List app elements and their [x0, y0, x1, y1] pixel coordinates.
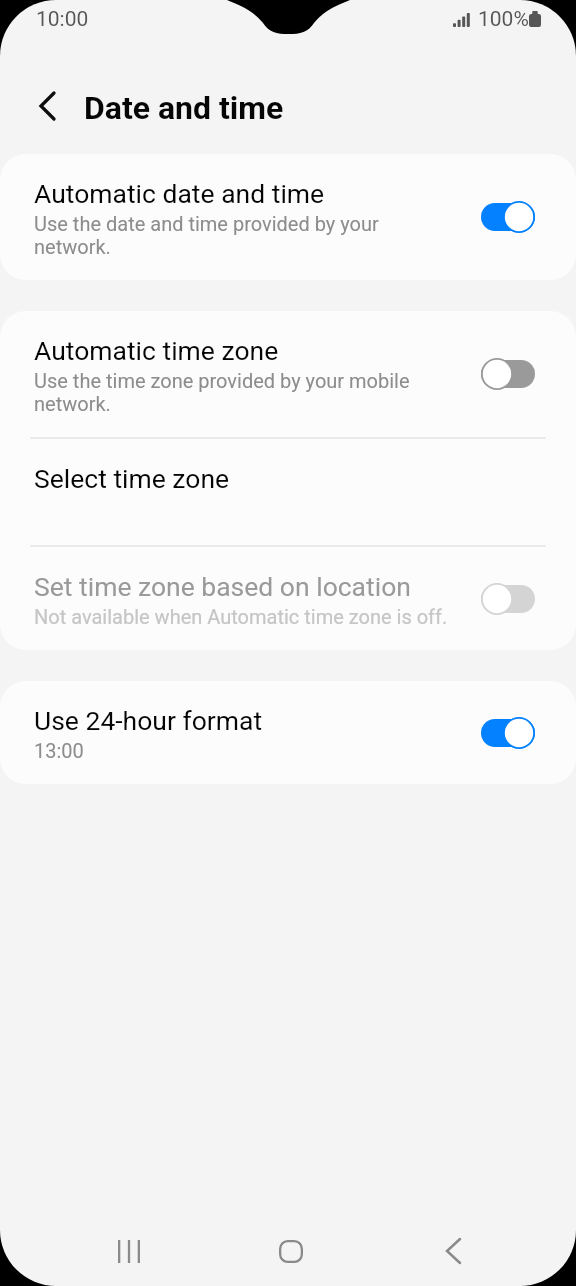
staticText: Select time zone	[34, 463, 230, 494]
staticText: 13:00	[34, 739, 84, 762]
staticText: Set time zone based on location	[34, 571, 411, 602]
button[interactable]: Back	[417, 1216, 489, 1286]
button[interactable]: Switch on	[481, 717, 535, 749]
staticText: Automatic date and time	[34, 178, 325, 209]
button[interactable]: Use 24-hour format	[0, 681, 576, 784]
staticText: Use the time zone provided by your mobil…	[34, 369, 454, 415]
staticText: 100%	[478, 7, 529, 32]
button[interactable]: Set time zone based on location	[0, 547, 576, 650]
staticText: Use the date and time provided by your n…	[34, 212, 454, 258]
button[interactable]: Recent apps	[93, 1216, 165, 1286]
staticText: Not available when Automatic time zone i…	[34, 605, 448, 628]
button[interactable]: Automatic date and time	[0, 154, 576, 280]
button[interactable]: Home	[255, 1216, 327, 1286]
button[interactable]: Switch off	[481, 358, 535, 390]
button[interactable]: Select time zone	[0, 439, 576, 545]
staticText: Date and time	[84, 89, 284, 127]
staticText: 10:00	[36, 7, 89, 32]
staticText: Use 24-hour format	[34, 705, 263, 736]
staticText: Automatic time zone	[34, 335, 279, 366]
button[interactable]: Automatic time zone	[0, 311, 576, 437]
button[interactable]: Switch off	[481, 583, 535, 615]
button[interactable]: Navigate up	[21, 80, 73, 132]
button[interactable]: Switch on	[481, 201, 535, 233]
